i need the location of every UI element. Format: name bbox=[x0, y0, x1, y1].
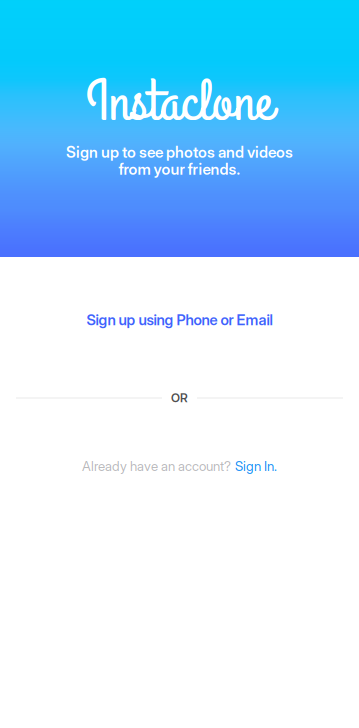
staticText: Already have an account? bbox=[82, 458, 231, 474]
staticText: OR bbox=[171, 391, 188, 405]
button[interactable]: Already have an account? bbox=[0, 449, 359, 483]
staticText: Sign up using Phone or Email bbox=[86, 311, 272, 329]
staticText: from your friends. bbox=[118, 160, 240, 179]
staticText: Sign up to see photos and videos bbox=[66, 143, 293, 162]
button[interactable]: Sign up using Phone or Email bbox=[0, 300, 359, 340]
staticText: Sign In. bbox=[235, 458, 277, 474]
staticText: Instaclone bbox=[86, 62, 273, 143]
